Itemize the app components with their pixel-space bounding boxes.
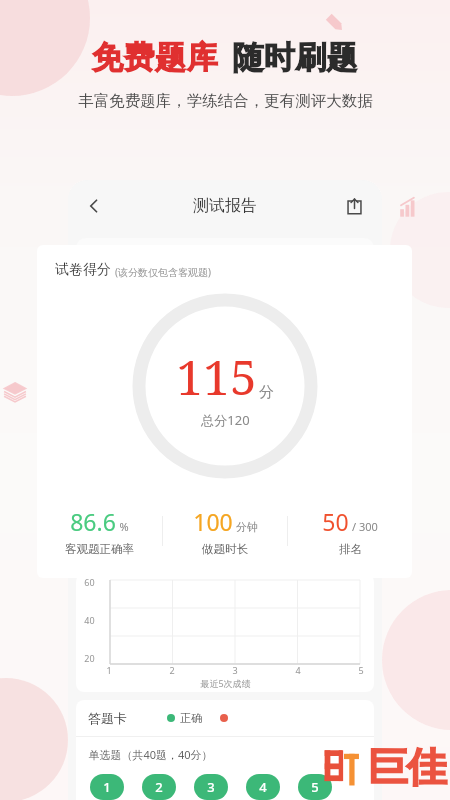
button[interactable]: 5 [298, 774, 332, 800]
staticText: 1 [106, 664, 112, 676]
button[interactable]: 1 [90, 774, 124, 800]
button[interactable]: 86.6 [37, 506, 162, 556]
staticText: 测试报告 [193, 196, 257, 216]
button[interactable]: 4 [246, 774, 280, 800]
staticText: 2 [169, 664, 175, 676]
staticText: 50 [322, 506, 349, 537]
staticText: 单选题（共40题，40分） [88, 747, 213, 762]
staticText: 丰富免费题库，学练结合，更有测评大数据 [78, 91, 373, 111]
staticText: 试卷得分 [55, 261, 111, 279]
staticText: 60 [84, 576, 95, 588]
staticText: 4 [259, 778, 267, 796]
staticText: 2 [155, 778, 163, 796]
staticText: 86.6 [70, 506, 116, 537]
staticText: 客观题正确率 [65, 542, 134, 556]
staticText: 巨佳 [368, 742, 446, 792]
staticText: 20 [84, 652, 95, 664]
staticText: 免费题库 [92, 38, 218, 77]
staticText: 5 [358, 664, 364, 676]
staticText: 100 [193, 506, 233, 537]
staticText: % [119, 519, 129, 534]
button[interactable]: 50 [288, 506, 412, 556]
staticText: 40 [84, 614, 95, 626]
staticText: 115 [176, 344, 257, 409]
staticText: 1 [103, 778, 111, 796]
staticText: / 300 [352, 519, 378, 534]
staticText: 3 [207, 778, 215, 796]
staticText: 排名 [339, 542, 362, 556]
staticText: 做题时长 [202, 542, 248, 556]
staticText: 4 [295, 664, 301, 676]
button[interactable]: 2 [142, 774, 176, 800]
button[interactable]: 100 [163, 506, 287, 556]
staticText: (该分数仅包含客观题) [115, 265, 211, 279]
staticText: 分 [259, 383, 274, 402]
button[interactable]: Back [74, 186, 114, 226]
button[interactable]: 3 [194, 774, 228, 800]
button[interactable]: Share [334, 186, 374, 226]
staticText: 5 [311, 778, 319, 796]
staticText: 正确 [180, 711, 202, 725]
staticText: 最近5次成绩 [200, 677, 251, 689]
staticText: 答题卡 [88, 710, 127, 726]
staticText: 总分120 [201, 411, 250, 429]
staticText: 随时刷题 [232, 38, 358, 77]
staticText: 3 [232, 664, 238, 676]
staticText: 分钟 [236, 520, 258, 534]
